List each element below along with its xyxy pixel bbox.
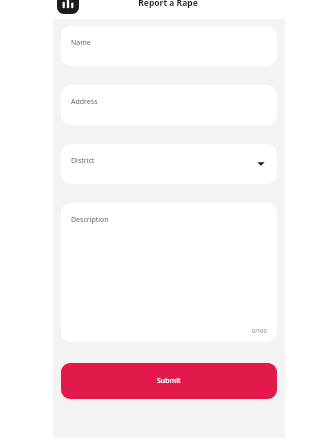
staticText: Name [71,38,91,48]
staticText: Report a Rape [138,0,198,9]
button[interactable]: Submit [61,363,277,399]
staticText: District [71,156,95,166]
staticText: Submit [157,376,181,386]
button[interactable]: District [61,144,277,184]
staticText: 0/100 [252,327,267,334]
button[interactable]: Address [61,85,277,125]
staticText: Address [71,97,98,107]
button[interactable]: Name [61,26,277,66]
staticText: Description [71,215,109,225]
other: Open district dropdown [256,159,266,169]
button[interactable]: Description [61,203,277,342]
button[interactable]: Menu [57,0,79,14]
